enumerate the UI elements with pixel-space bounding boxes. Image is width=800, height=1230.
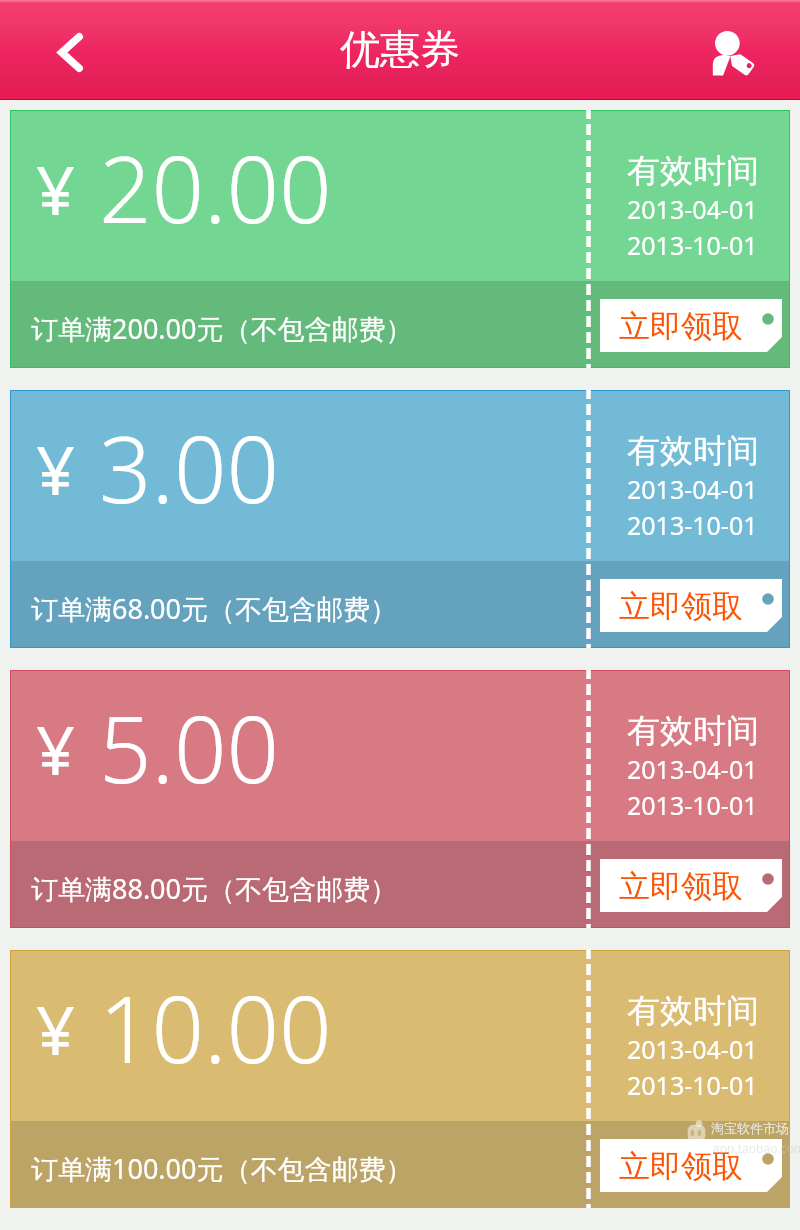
staticText: 淘宝软件市场	[711, 1120, 789, 1136]
staticText: 优惠券	[340, 24, 460, 74]
staticText: 有效时间	[627, 430, 759, 472]
staticText: 20.00	[99, 125, 332, 250]
staticText: ¥	[36, 422, 75, 515]
staticText: 2013-04-01	[627, 752, 758, 786]
staticText: ¥	[36, 982, 75, 1075]
staticText: 2013-10-01	[627, 508, 758, 542]
staticText: 10.00	[99, 965, 332, 1090]
staticText: 2013-04-01	[627, 192, 758, 226]
staticText: 订单满68.00元（不包含邮费）	[31, 590, 398, 627]
button[interactable]: ¥	[10, 110, 790, 368]
staticText: 2013-10-01	[627, 788, 758, 822]
staticText: 有效时间	[627, 150, 759, 192]
staticText: 立即领取	[619, 307, 743, 346]
button[interactable]: Back	[35, 10, 105, 90]
staticText: 3.00	[99, 405, 280, 530]
staticText: 订单满200.00元（不包含邮费）	[31, 310, 413, 347]
staticText: 订单满88.00元（不包含邮费）	[31, 870, 398, 907]
staticText: 有效时间	[627, 990, 759, 1032]
button[interactable]: ¥	[10, 390, 790, 648]
button[interactable]: ¥	[10, 670, 790, 928]
staticText: 订单满100.00元（不包含邮费）	[31, 1150, 413, 1187]
button[interactable]: 立即领取	[600, 1139, 782, 1192]
staticText: 立即领取	[619, 867, 743, 906]
staticText: 立即领取	[619, 587, 743, 626]
button[interactable]: 立即领取	[600, 579, 782, 632]
staticText: 2013-04-01	[627, 472, 758, 506]
staticText: app.taobao.com	[713, 1140, 800, 1156]
staticText: 5.00	[99, 685, 280, 810]
button[interactable]: My coupons	[697, 10, 767, 90]
staticText: ¥	[36, 702, 75, 795]
staticText: 立即领取	[619, 1147, 743, 1186]
button[interactable]: 立即领取	[600, 299, 782, 352]
staticText: 2013-10-01	[627, 1068, 758, 1102]
staticText: 2013-04-01	[627, 1032, 758, 1066]
button[interactable]: 立即领取	[600, 859, 782, 912]
staticText: 有效时间	[627, 710, 759, 752]
staticText: 2013-10-01	[627, 228, 758, 262]
button[interactable]: ¥	[10, 950, 790, 1208]
staticText: ¥	[36, 142, 75, 235]
